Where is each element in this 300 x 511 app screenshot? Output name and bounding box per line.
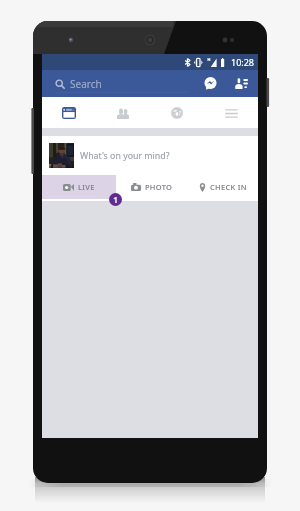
button[interactable]: LIVE bbox=[42, 175, 116, 199]
staticText: LIVE bbox=[78, 182, 95, 192]
staticText: PHOTO bbox=[145, 182, 173, 192]
button[interactable]: Menu bbox=[204, 97, 258, 128]
button[interactable]: What's on your mind? bbox=[42, 136, 258, 175]
button[interactable]: Notifications bbox=[150, 97, 204, 128]
button[interactable]: Messenger bbox=[195, 70, 225, 97]
button[interactable]: PHOTO bbox=[116, 175, 187, 199]
staticText: Search bbox=[70, 77, 102, 91]
staticText: 1 bbox=[113, 194, 118, 205]
button[interactable]: Search bbox=[42, 70, 195, 97]
button[interactable]: CHECK IN bbox=[187, 175, 258, 199]
staticText: CHECK IN bbox=[210, 182, 247, 192]
button[interactable]: Friends bbox=[96, 97, 150, 128]
button[interactable]: News Feed bbox=[42, 97, 96, 128]
staticText: 10:28 bbox=[231, 56, 255, 68]
staticText: What's on your mind? bbox=[80, 150, 170, 162]
button[interactable]: 1 bbox=[109, 193, 122, 206]
button[interactable]: Friend requests bbox=[225, 70, 258, 97]
